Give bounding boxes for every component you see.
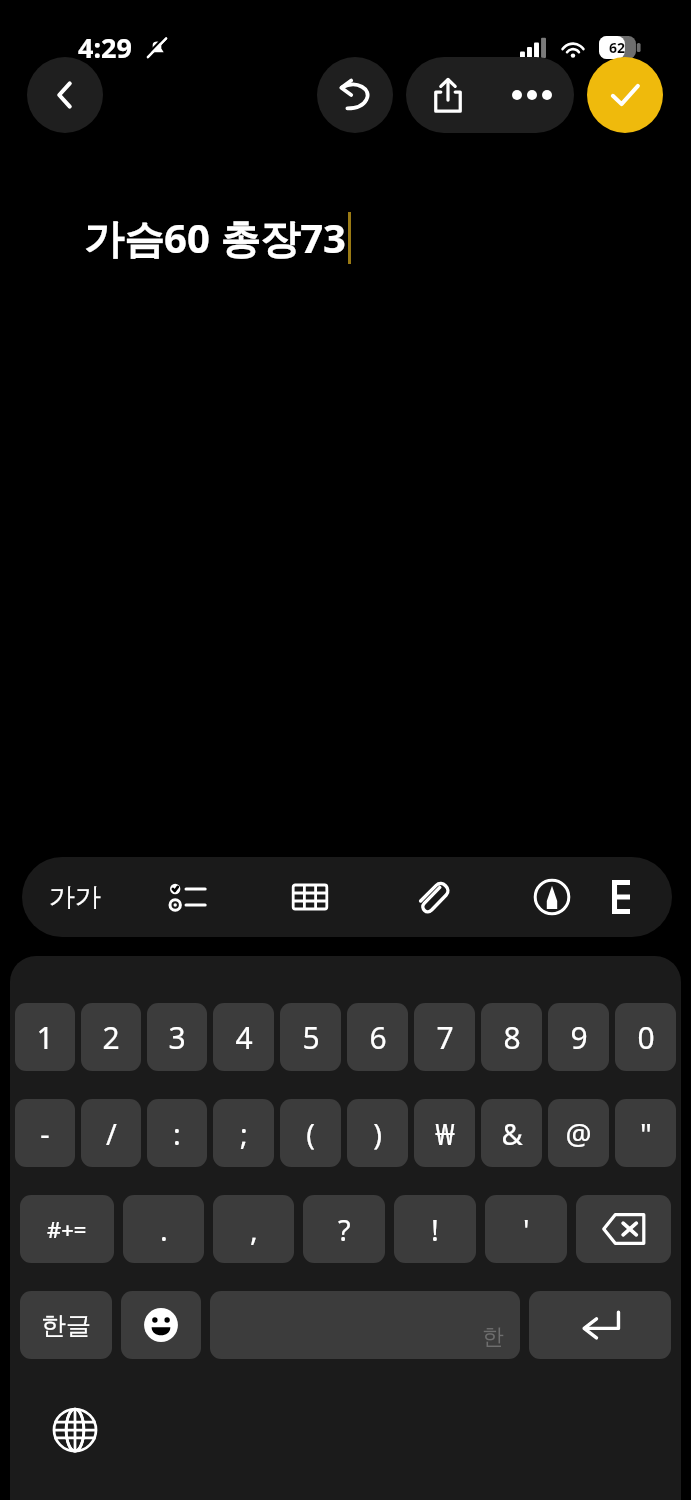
- staticText: :: [173, 1114, 181, 1153]
- button[interactable]: ': [485, 1195, 567, 1263]
- button[interactable]: Done: [587, 57, 663, 133]
- staticText: 9: [570, 1017, 588, 1058]
- staticText: 8: [503, 1017, 521, 1058]
- button[interactable]: /: [81, 1099, 141, 1167]
- staticText: 한: [482, 1323, 504, 1351]
- staticText: .: [160, 1210, 168, 1249]
- button[interactable]: 7: [414, 1003, 475, 1071]
- button[interactable]: ;: [213, 1099, 274, 1167]
- button[interactable]: 9: [548, 1003, 609, 1071]
- button[interactable]: Change keyboard language: [47, 1402, 103, 1458]
- staticText: ): [373, 1114, 382, 1153]
- button[interactable]: Backspace: [576, 1195, 671, 1263]
- button[interactable]: -: [15, 1099, 75, 1167]
- staticText: 가가: [49, 881, 101, 914]
- staticText: ': [523, 1210, 530, 1249]
- button[interactable]: 5: [280, 1003, 341, 1071]
- staticText: /: [106, 1114, 117, 1153]
- staticText: 2: [102, 1017, 120, 1058]
- button[interactable]: Enter: [529, 1291, 671, 1359]
- button[interactable]: Emoji: [121, 1291, 201, 1359]
- button[interactable]: ,: [213, 1195, 294, 1263]
- staticText: 4:29: [78, 29, 132, 66]
- button[interactable]: More options: [490, 57, 574, 133]
- button[interactable]: Draw: [491, 857, 612, 937]
- button[interactable]: &: [481, 1099, 542, 1167]
- staticText: 0: [637, 1017, 655, 1058]
- staticText: 가슴60 총장73: [84, 210, 346, 265]
- button[interactable]: .: [123, 1195, 204, 1263]
- button[interactable]: 0: [615, 1003, 676, 1071]
- button[interactable]: !: [394, 1195, 476, 1263]
- staticText: 1: [36, 1017, 54, 1058]
- staticText: !: [431, 1210, 439, 1249]
- button[interactable]: 한글: [20, 1291, 112, 1359]
- staticText: ,: [250, 1210, 258, 1249]
- staticText: 4: [235, 1017, 253, 1058]
- button[interactable]: 8: [481, 1003, 542, 1071]
- staticText: #+=: [47, 1214, 87, 1244]
- button[interactable]: Space: [210, 1291, 520, 1359]
- staticText: @: [565, 1114, 592, 1153]
- staticText: ₩: [435, 1114, 455, 1153]
- button[interactable]: ": [615, 1099, 676, 1167]
- button[interactable]: 가가: [22, 857, 127, 937]
- staticText: ": [640, 1114, 652, 1153]
- button[interactable]: ₩: [414, 1099, 475, 1167]
- button[interactable]: Share: [406, 57, 490, 133]
- staticText: &: [501, 1114, 523, 1153]
- button[interactable]: Undo: [317, 57, 393, 133]
- staticText: 한글: [41, 1310, 91, 1341]
- button[interactable]: Checklist: [127, 857, 249, 937]
- button[interactable]: ?: [303, 1195, 385, 1263]
- button[interactable]: :: [147, 1099, 207, 1167]
- button[interactable]: Attach: [370, 857, 491, 937]
- button[interactable]: 3: [147, 1003, 207, 1071]
- button[interactable]: Back: [27, 57, 103, 133]
- button[interactable]: @: [548, 1099, 609, 1167]
- staticText: 62: [609, 38, 626, 57]
- staticText: 6: [369, 1017, 387, 1058]
- button[interactable]: 4: [213, 1003, 274, 1071]
- button[interactable]: Table: [249, 857, 370, 937]
- button[interactable]: #+=: [20, 1195, 114, 1263]
- button[interactable]: More formatting: [612, 857, 672, 937]
- staticText: 5: [302, 1017, 320, 1058]
- button[interactable]: (: [280, 1099, 341, 1167]
- button[interactable]: 1: [15, 1003, 75, 1071]
- button[interactable]: 6: [347, 1003, 408, 1071]
- staticText: 7: [436, 1017, 454, 1058]
- button[interactable]: ): [347, 1099, 408, 1167]
- staticText: ;: [240, 1114, 248, 1153]
- button[interactable]: 2: [81, 1003, 141, 1071]
- staticText: (: [306, 1114, 315, 1153]
- staticText: ?: [338, 1210, 351, 1249]
- staticText: -: [40, 1114, 50, 1153]
- staticText: 3: [168, 1017, 186, 1058]
